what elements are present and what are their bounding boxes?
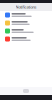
button[interactable] (0, 35, 52, 43)
button[interactable] (0, 19, 52, 27)
button[interactable] (0, 11, 52, 19)
button[interactable] (0, 27, 52, 35)
staticText: Notifications (15, 4, 36, 10)
